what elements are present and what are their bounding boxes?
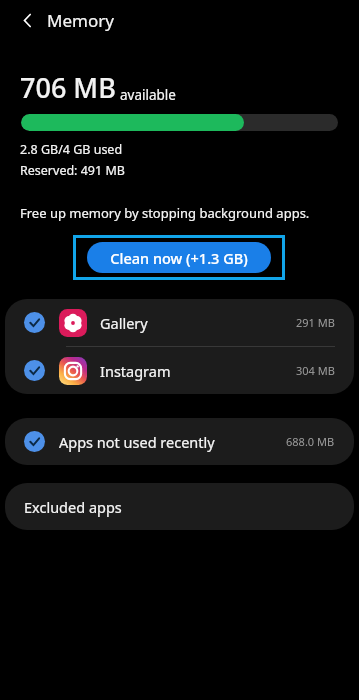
staticText: available <box>120 86 176 104</box>
staticText: Memory <box>47 9 114 32</box>
staticText: 304 MB <box>296 363 335 378</box>
staticText: Gallery <box>100 313 148 333</box>
staticText: 688.0 MB <box>286 434 335 449</box>
button[interactable]: Clean now (+1.3 GB) <box>87 242 271 273</box>
staticText: Apps not used recently <box>59 432 215 452</box>
staticText: 2.8 GB/4 GB used <box>20 141 123 158</box>
button[interactable]: Back <box>12 5 42 35</box>
staticText: Reserved: 491 MB <box>20 162 125 179</box>
button[interactable]: Instagram <box>5 347 354 394</box>
button[interactable]: Apps not used recently <box>5 418 354 465</box>
staticText: Free up memory by stopping background ap… <box>20 204 310 222</box>
staticText: 706 MB <box>20 69 116 106</box>
staticText: Instagram <box>100 361 171 381</box>
staticText: Excluded apps <box>24 497 122 517</box>
staticText: Clean now (+1.3 GB) <box>110 248 248 268</box>
staticText: 291 MB <box>296 315 335 330</box>
button[interactable]: Gallery <box>5 299 354 346</box>
button[interactable]: Excluded apps <box>5 483 354 530</box>
